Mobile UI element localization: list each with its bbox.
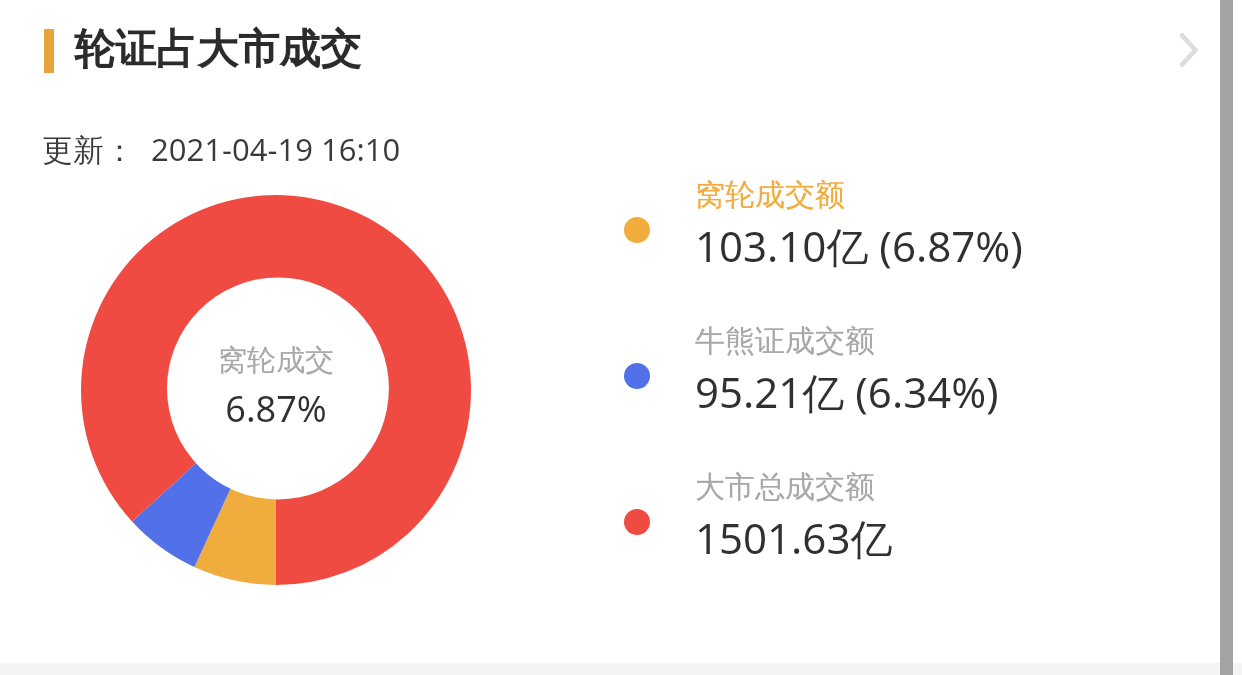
staticText: 大市总成交额 <box>695 468 875 506</box>
staticText: 更新： 2021-04-19 16:10 <box>42 128 401 170</box>
staticText: 1501.63亿 <box>695 509 893 566</box>
staticText: 轮证占大市成交 <box>74 24 361 76</box>
staticText: 牛熊证成交额 <box>695 322 875 360</box>
staticText: 6.87% <box>225 384 327 433</box>
button[interactable]: 轮证占大市成交 <box>0 0 1242 100</box>
staticText: 窝轮成交额 <box>695 176 845 214</box>
button[interactable]: 牛熊证成交额 <box>608 322 1128 434</box>
staticText: 95.21亿 (6.34%) <box>695 363 999 420</box>
staticText: 窝轮成交 <box>218 342 334 379</box>
button[interactable]: 查看详情 <box>1142 5 1232 95</box>
button[interactable]: 大市总成交额 <box>608 468 1128 580</box>
staticText: 103.10亿 (6.87%) <box>695 217 1023 274</box>
button[interactable]: 窝轮成交额 <box>608 176 1128 288</box>
